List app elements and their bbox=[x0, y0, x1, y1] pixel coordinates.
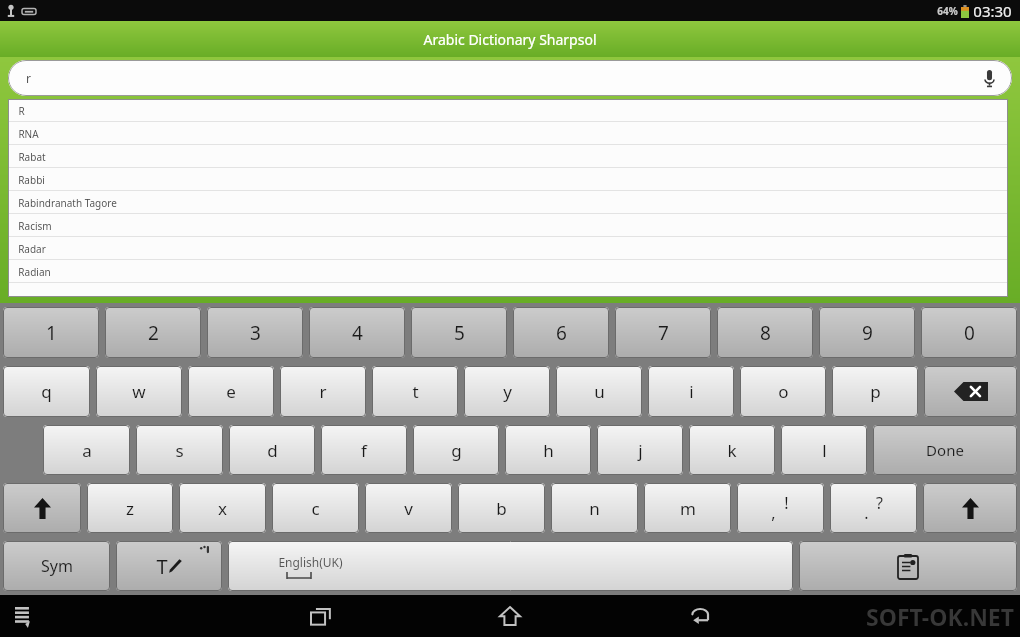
button[interactable]: Rabat bbox=[8, 145, 1008, 168]
staticText: ! bbox=[784, 492, 789, 514]
button[interactable]: 4 bbox=[309, 307, 405, 358]
button[interactable]: k bbox=[689, 425, 775, 475]
staticText: f bbox=[361, 439, 367, 462]
staticText: R bbox=[18, 104, 25, 118]
button[interactable]: 9 bbox=[819, 307, 915, 358]
button[interactable]: Done bbox=[873, 425, 1017, 475]
button[interactable]: g bbox=[413, 425, 499, 475]
button[interactable]: Home bbox=[490, 596, 530, 636]
staticText: RNA bbox=[18, 127, 39, 141]
staticText: m bbox=[680, 497, 696, 520]
staticText: r bbox=[319, 380, 327, 403]
button[interactable]: q bbox=[3, 366, 90, 417]
staticText: 0 bbox=[964, 320, 975, 346]
button[interactable]: f bbox=[321, 425, 407, 475]
staticText: u bbox=[594, 380, 605, 403]
button[interactable]: x bbox=[179, 483, 266, 533]
staticText: z bbox=[126, 497, 134, 520]
staticText: T bbox=[156, 553, 168, 580]
button[interactable]: Rabbi bbox=[8, 168, 1008, 191]
button[interactable]: 3 bbox=[207, 307, 303, 358]
staticText: 6 bbox=[556, 320, 567, 346]
button[interactable]: Racism bbox=[8, 214, 1008, 237]
button[interactable]: Voice input bbox=[978, 67, 1000, 89]
staticText: t bbox=[412, 380, 419, 403]
staticText: s bbox=[175, 439, 184, 462]
staticText: o bbox=[778, 380, 789, 403]
staticText: . bbox=[864, 502, 869, 524]
staticText: Rabat bbox=[18, 150, 46, 164]
button[interactable]: l bbox=[781, 425, 867, 475]
button[interactable]: Shift bbox=[3, 483, 81, 533]
staticText: n bbox=[589, 497, 600, 520]
button[interactable]: RNA bbox=[8, 122, 1008, 145]
button[interactable]: 0 bbox=[921, 307, 1017, 358]
button[interactable]: r bbox=[280, 366, 366, 417]
staticText: , bbox=[771, 502, 776, 524]
staticText: q bbox=[41, 380, 52, 403]
button[interactable]: Recent apps bbox=[300, 596, 340, 636]
button[interactable]: 7 bbox=[615, 307, 711, 358]
staticText: Rabindranath Tagore bbox=[18, 196, 117, 210]
staticText: Sym bbox=[41, 555, 73, 577]
staticText: Racism bbox=[18, 219, 52, 233]
staticText: Done bbox=[926, 440, 964, 460]
staticText: x bbox=[218, 497, 227, 520]
button[interactable]: 8 bbox=[717, 307, 813, 358]
staticText: r bbox=[26, 70, 31, 86]
button[interactable]: j bbox=[597, 425, 683, 475]
staticText: w bbox=[132, 380, 146, 403]
button[interactable]: Hide keyboard bbox=[6, 599, 40, 633]
button[interactable]: 2 bbox=[105, 307, 201, 358]
button[interactable]: Space bbox=[228, 541, 793, 591]
button[interactable]: Back bbox=[680, 596, 720, 636]
staticText: 3 bbox=[250, 320, 261, 346]
staticText: h bbox=[543, 439, 554, 462]
button[interactable]: 1 bbox=[3, 307, 99, 358]
button[interactable]: m bbox=[644, 483, 731, 533]
button[interactable]: Comma and exclamation bbox=[737, 483, 824, 533]
staticText: b bbox=[496, 497, 507, 520]
button[interactable]: Clipboard bbox=[799, 541, 1017, 591]
button[interactable]: h bbox=[505, 425, 591, 475]
staticText: c bbox=[311, 497, 320, 520]
button[interactable]: R bbox=[8, 99, 1008, 122]
button[interactable]: y bbox=[464, 366, 550, 417]
staticText: j bbox=[638, 439, 643, 462]
button[interactable]: i bbox=[648, 366, 734, 417]
button[interactable]: Rabindranath Tagore bbox=[8, 191, 1008, 214]
staticText: i bbox=[689, 380, 694, 403]
button[interactable]: 5 bbox=[411, 307, 507, 358]
button[interactable]: Radian bbox=[8, 260, 1008, 283]
button[interactable]: d bbox=[229, 425, 315, 475]
staticText: Rabbi bbox=[18, 173, 45, 187]
button[interactable]: Radar bbox=[8, 237, 1008, 260]
button[interactable]: Sym bbox=[3, 541, 110, 591]
button[interactable]: s bbox=[136, 425, 223, 475]
button[interactable]: z bbox=[87, 483, 173, 533]
button[interactable]: u bbox=[556, 366, 642, 417]
button[interactable]: w bbox=[96, 366, 182, 417]
staticText: 2 bbox=[148, 320, 159, 346]
button[interactable]: o bbox=[740, 366, 826, 417]
staticText: e bbox=[226, 380, 236, 403]
button[interactable]: r bbox=[8, 60, 1012, 96]
button[interactable]: Backspace bbox=[924, 366, 1017, 417]
button[interactable]: c bbox=[272, 483, 359, 533]
button[interactable]: e bbox=[188, 366, 274, 417]
staticText: Arabic Dictionary Sharpsol bbox=[423, 30, 597, 49]
staticText: v bbox=[404, 497, 413, 520]
button[interactable]: v bbox=[365, 483, 452, 533]
button[interactable]: Period and question bbox=[830, 483, 917, 533]
button[interactable]: p bbox=[832, 366, 918, 417]
staticText: d bbox=[267, 439, 278, 462]
staticText: SOFT-OK.NET bbox=[866, 601, 1014, 632]
button[interactable]: Shift bbox=[923, 483, 1017, 533]
button[interactable]: Handwriting bbox=[116, 541, 222, 591]
button[interactable]: t bbox=[372, 366, 458, 417]
button[interactable]: b bbox=[458, 483, 545, 533]
button[interactable]: 6 bbox=[513, 307, 609, 358]
button[interactable]: n bbox=[551, 483, 638, 533]
staticText: 03:30 bbox=[973, 1, 1012, 21]
button[interactable]: a bbox=[43, 425, 130, 475]
